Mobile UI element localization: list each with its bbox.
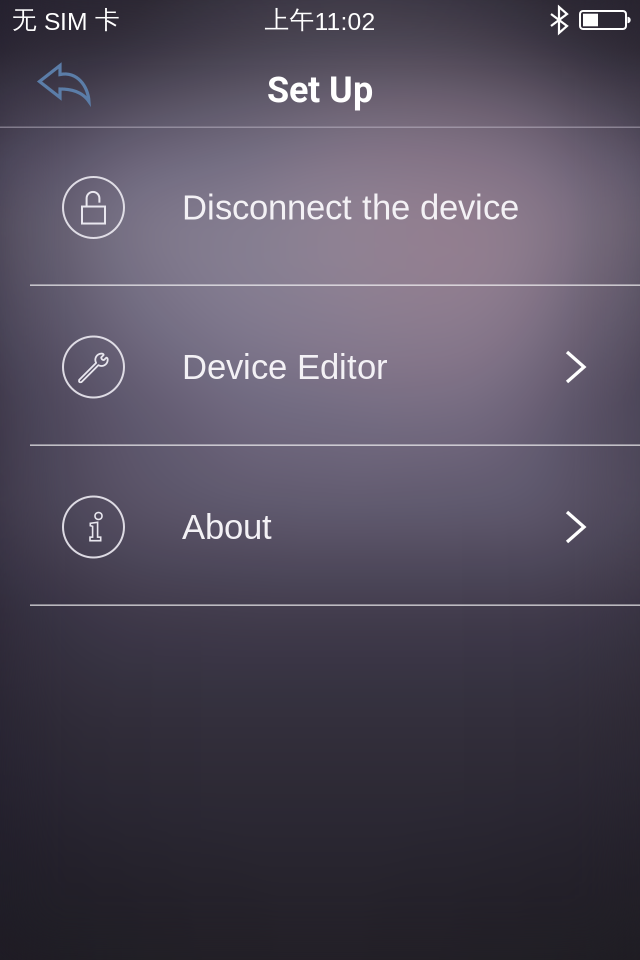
button[interactable]: Back <box>0 40 90 105</box>
staticText: Disconnect the device <box>182 188 519 227</box>
staticText: Set Up <box>267 69 373 111</box>
staticText: About <box>182 508 272 546</box>
staticText: 无 SIM 卡 <box>12 4 120 36</box>
button[interactable]: Device Editor <box>0 287 640 447</box>
button[interactable]: Disconnect the device <box>0 128 640 287</box>
staticText: 上午11:02 <box>264 4 375 36</box>
staticText: Device Editor <box>182 348 388 386</box>
button[interactable]: About <box>0 447 640 607</box>
